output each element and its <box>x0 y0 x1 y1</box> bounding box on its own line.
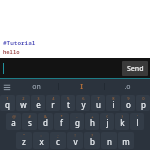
staticText: q <box>5 99 10 110</box>
button[interactable]: 7 <box>91 95 105 111</box>
button[interactable]: m <box>118 132 134 149</box>
staticText: v <box>73 136 78 147</box>
staticText: o <box>126 99 131 110</box>
button[interactable]: + <box>85 113 99 130</box>
button[interactable]: .o <box>105 79 150 94</box>
staticText: #Tutorial <box>3 39 36 47</box>
staticText: 0 <box>142 96 145 101</box>
staticText: j <box>106 117 109 128</box>
button[interactable]: 2 <box>16 95 30 111</box>
staticText: p <box>141 99 146 110</box>
staticText: e <box>36 99 41 110</box>
staticText: 8 <box>112 96 115 101</box>
staticText: i <box>112 99 115 110</box>
button[interactable]: 1 <box>0 95 15 111</box>
staticText: 6 <box>82 96 85 101</box>
button[interactable]: " <box>16 132 32 149</box>
staticText: @ <box>12 114 16 119</box>
staticText: 9 <box>127 96 130 101</box>
staticText: on <box>32 82 41 92</box>
staticText: m <box>122 136 130 147</box>
button[interactable]: Send <box>122 61 148 76</box>
button[interactable]: ' <box>130 113 144 130</box>
button[interactable]: # <box>22 113 37 130</box>
staticText: b <box>90 136 95 147</box>
button[interactable]: * <box>54 113 69 130</box>
staticText: k <box>120 117 125 128</box>
staticText: ? <box>91 133 93 138</box>
staticText: hello <box>3 48 20 55</box>
staticText: + <box>91 114 94 119</box>
staticText: & <box>44 114 47 119</box>
staticText: ! <box>74 133 76 138</box>
staticText: 2 <box>22 96 25 101</box>
staticText: ( <box>106 114 108 119</box>
staticText: * <box>60 114 63 119</box>
button[interactable]: 4 <box>46 95 60 111</box>
button[interactable]: : <box>33 132 49 149</box>
button[interactable] <box>0 58 120 78</box>
staticText: ' <box>137 114 138 119</box>
button[interactable]: I <box>59 79 104 94</box>
staticText: s <box>28 117 32 128</box>
staticText: 5 <box>67 96 70 101</box>
button[interactable]: ; <box>50 132 66 149</box>
staticText: ; <box>57 133 59 138</box>
staticText: f <box>60 117 63 128</box>
button[interactable]: 5 <box>61 95 75 111</box>
staticText: l <box>136 117 139 128</box>
staticText: z <box>22 136 26 147</box>
staticText: h <box>90 117 95 128</box>
button[interactable]: ? <box>84 132 100 149</box>
staticText: I <box>80 82 83 92</box>
button[interactable]: 6 <box>76 95 90 111</box>
button[interactable]: 3 <box>31 95 45 111</box>
staticText: 1 <box>6 96 9 101</box>
staticText: r <box>51 99 55 110</box>
staticText: w <box>20 99 27 110</box>
staticText: 4 <box>52 96 55 101</box>
button[interactable]: n <box>101 132 117 149</box>
staticText: u <box>96 99 101 110</box>
staticText: g <box>75 117 80 128</box>
button[interactable]: - <box>70 113 84 130</box>
staticText: - <box>76 114 78 119</box>
button[interactable]: ! <box>67 132 83 149</box>
button[interactable]: Keyboard menu <box>0 79 14 94</box>
staticText: n <box>107 136 112 147</box>
staticText: Send <box>127 64 144 74</box>
button[interactable]: ( <box>100 113 114 130</box>
button[interactable]: 8 <box>106 95 120 111</box>
staticText: a <box>11 117 16 128</box>
staticText: d <box>43 117 48 128</box>
staticText: 3 <box>37 96 40 101</box>
staticText: # <box>28 114 31 119</box>
button[interactable]: 9 <box>121 95 135 111</box>
button[interactable]: @ <box>6 113 21 130</box>
staticText: x <box>39 136 44 147</box>
button[interactable]: on <box>14 79 58 94</box>
staticText: ) <box>121 114 123 119</box>
button[interactable]: ) <box>115 113 129 130</box>
staticText: 7 <box>97 96 100 101</box>
button[interactable]: 0 <box>136 95 150 111</box>
staticText: " <box>23 133 25 138</box>
button[interactable]: & <box>38 113 53 130</box>
staticText: .o <box>124 82 131 92</box>
staticText: : <box>40 133 42 138</box>
staticText: c <box>56 136 60 147</box>
staticText: y <box>81 99 86 110</box>
staticText: t <box>67 99 70 110</box>
